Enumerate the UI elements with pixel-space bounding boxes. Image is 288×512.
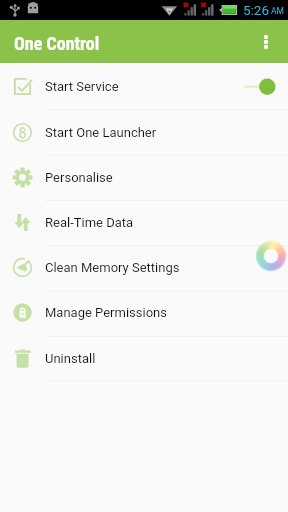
staticText: Clean Memory Settings: [45, 260, 180, 275]
staticText: Real-Time Data: [45, 215, 134, 230]
staticText: One Control: [14, 33, 100, 54]
button[interactable]: Personalise: [0, 155, 288, 200]
staticText: Personalise: [45, 170, 113, 185]
button[interactable]: Uninstall: [0, 336, 288, 381]
staticText: 5:26: [243, 2, 270, 18]
staticText: AM: [271, 6, 284, 16]
staticText: Start Service: [45, 79, 119, 94]
button[interactable]: Start One Launcher: [0, 109, 288, 155]
button[interactable]: Manage Permissions: [0, 290, 288, 335]
staticText: Manage Permissions: [45, 305, 167, 320]
button[interactable]: Start Service: [0, 63, 288, 109]
button[interactable]: More options: [244, 20, 288, 63]
staticText: Uninstall: [45, 351, 96, 366]
button[interactable]: Clean Memory Settings: [0, 245, 288, 290]
staticText: Start One Launcher: [45, 125, 157, 140]
button[interactable]: Real-Time Data: [0, 200, 288, 245]
